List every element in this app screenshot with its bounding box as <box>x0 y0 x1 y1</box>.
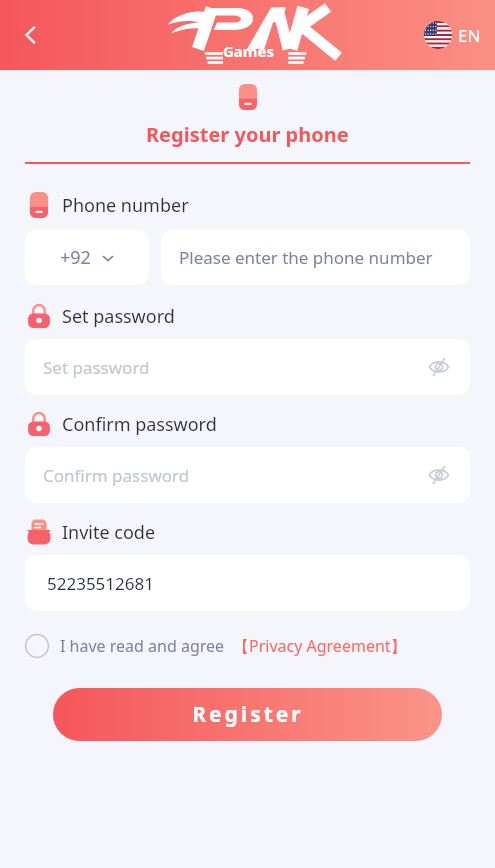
button[interactable]: Please enter the phone number <box>161 230 470 285</box>
staticText: Register your phone <box>146 121 349 148</box>
staticText: I have read and agree <box>60 635 225 657</box>
button[interactable]: I have read and agree <box>24 633 495 659</box>
staticText: EN <box>458 24 481 47</box>
staticText: +92 <box>60 245 91 270</box>
staticText: Confirm password <box>62 412 217 437</box>
button[interactable]: Show password <box>424 352 454 382</box>
staticText: Games <box>223 41 274 61</box>
staticText: Register <box>192 700 304 729</box>
button[interactable]: 【Privacy Agreement】 <box>233 635 407 657</box>
button[interactable]: Register <box>53 688 442 741</box>
staticText: Set password <box>62 304 175 329</box>
staticText: Confirm password <box>43 464 190 487</box>
staticText: 52235512681 <box>47 572 154 595</box>
staticText: Invite code <box>62 520 156 545</box>
staticText: Please enter the phone number <box>179 246 433 269</box>
button[interactable]: Confirm password <box>25 447 470 503</box>
staticText: Set password <box>43 356 150 379</box>
button[interactable]: Show password <box>424 460 454 490</box>
staticText: Phone number <box>62 193 189 218</box>
button[interactable]: Set password <box>25 339 470 395</box>
other: Language English <box>424 21 452 49</box>
button[interactable]: Back <box>8 12 54 58</box>
button[interactable]: Language English <box>424 21 481 49</box>
button[interactable]: 52235512681 <box>25 555 470 611</box>
button[interactable]: +92 <box>25 230 149 285</box>
